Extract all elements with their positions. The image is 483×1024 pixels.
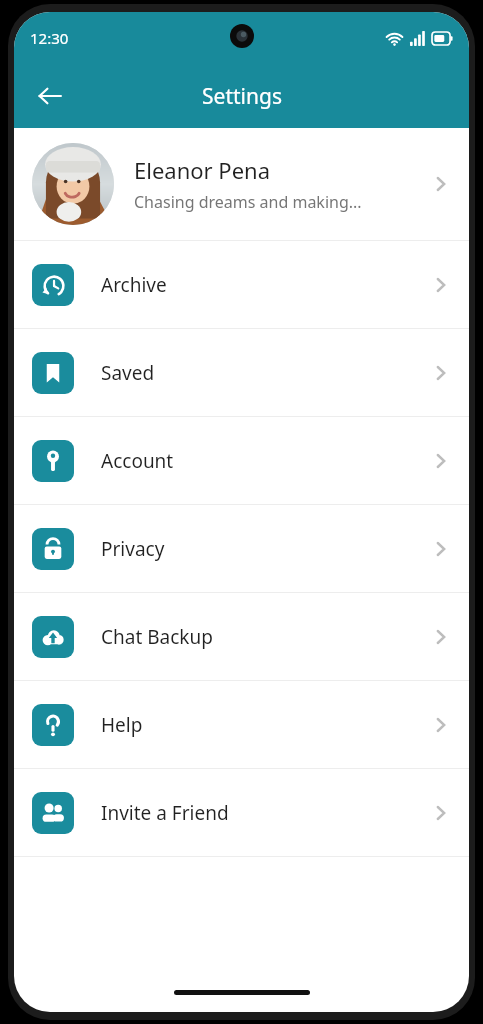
staticText: Archive xyxy=(101,272,431,298)
button[interactable]: Chat Backup xyxy=(14,593,469,680)
button[interactable]: Privacy xyxy=(14,505,469,592)
button[interactable]: Archive xyxy=(14,241,469,328)
button[interactable]: Back xyxy=(26,72,74,120)
staticText: Eleanor Pena xyxy=(134,155,271,185)
staticText: Chasing dreams and making... xyxy=(134,191,362,213)
staticText: Help xyxy=(101,712,431,738)
staticText: Chat Backup xyxy=(101,624,431,650)
staticText: Saved xyxy=(101,360,431,386)
button[interactable]: Help xyxy=(14,681,469,768)
staticText: Invite a Friend xyxy=(101,800,431,826)
staticText: Settings xyxy=(202,82,282,111)
button[interactable]: Eleanor Pena xyxy=(14,128,469,240)
button[interactable]: Saved xyxy=(14,329,469,416)
staticText: 12:30 xyxy=(30,28,69,48)
staticText: Account xyxy=(101,448,431,474)
button[interactable]: Account xyxy=(14,417,469,504)
button[interactable]: Invite a Friend xyxy=(14,769,469,856)
staticText: Privacy xyxy=(101,536,431,562)
